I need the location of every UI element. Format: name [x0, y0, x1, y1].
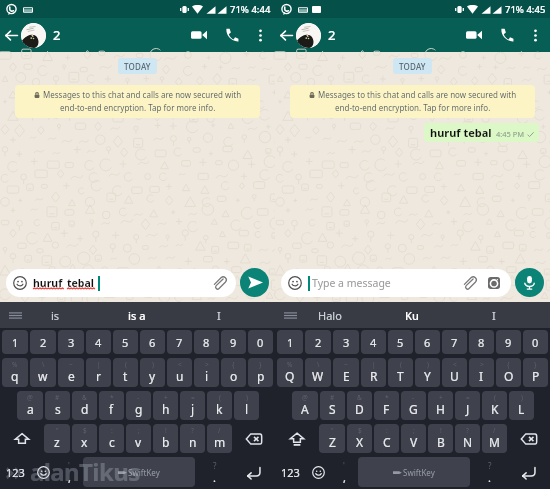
button[interactable]: ? — [197, 457, 232, 487]
button[interactable]: ) — [415, 358, 440, 387]
button[interactable]: I — [453, 302, 535, 328]
button[interactable]: Shift — [276, 424, 318, 453]
button[interactable]: ? — [455, 424, 480, 453]
button[interactable]: Record voice message — [515, 268, 544, 297]
button[interactable]: | — [86, 358, 111, 387]
button[interactable]: ' — [332, 457, 356, 487]
button[interactable]: @ — [17, 391, 43, 420]
button[interactable]: huruf — [6, 269, 236, 297]
button[interactable]: / — [207, 424, 232, 453]
button[interactable]: Backspace — [508, 424, 549, 453]
button[interactable]: TODAY — [393, 58, 432, 74]
button[interactable]: \ — [30, 358, 56, 387]
button[interactable]: Halo — [289, 302, 371, 328]
button[interactable]: 123 — [1, 457, 29, 487]
button[interactable]: 9 — [221, 330, 246, 354]
button[interactable]: ( — [113, 358, 138, 387]
button[interactable]: + — [428, 391, 453, 420]
button[interactable]: Attach — [460, 274, 478, 292]
button[interactable]: huruf tebal — [424, 123, 539, 142]
button[interactable]: ; — [126, 424, 151, 453]
button[interactable]: ? — [180, 424, 205, 453]
button[interactable]: Voice call — [220, 23, 244, 47]
button[interactable]: * — [99, 391, 124, 420]
button[interactable]: " — [319, 424, 345, 453]
button[interactable]: = — [180, 391, 205, 420]
button[interactable]: 7 — [442, 330, 467, 354]
button[interactable]: Space — [83, 457, 195, 487]
button[interactable]: 4 — [361, 330, 386, 354]
button[interactable]: ( — [388, 358, 413, 387]
button[interactable]: Backspace — [233, 424, 274, 453]
button[interactable]: More options — [525, 25, 545, 45]
button[interactable]: Video call — [461, 22, 487, 48]
button[interactable]: / — [482, 424, 507, 453]
button[interactable]: Messages to this chat and calls are now … — [290, 85, 535, 118]
button[interactable]: More options — [250, 25, 270, 45]
button[interactable]: Enter — [232, 457, 274, 487]
button[interactable]: Keyboard menu — [284, 309, 297, 322]
button[interactable]: Shift — [1, 424, 43, 453]
button[interactable]: 7 — [167, 330, 192, 354]
button[interactable]: > — [469, 358, 494, 387]
button[interactable]: > — [194, 358, 219, 387]
button[interactable]: ; — [401, 424, 426, 453]
button[interactable]: 6 — [140, 330, 165, 354]
button[interactable]: ! — [428, 424, 453, 453]
button[interactable]: ( — [207, 391, 232, 420]
button[interactable]: Space — [358, 457, 470, 487]
button[interactable]: 5 — [388, 330, 413, 354]
button[interactable]: { — [496, 358, 521, 387]
button[interactable]: < — [442, 358, 467, 387]
button[interactable]: $ — [72, 424, 97, 453]
button[interactable]: Attach — [210, 274, 228, 292]
button[interactable]: I — [178, 302, 260, 328]
button[interactable]: = — [455, 391, 480, 420]
button[interactable]: Video call — [186, 22, 212, 48]
button[interactable]: Camera — [485, 274, 503, 292]
button[interactable]: TODAY — [118, 58, 157, 74]
button[interactable]: ! — [153, 424, 178, 453]
button[interactable]: Enter — [507, 457, 549, 487]
button[interactable]: Emoji — [29, 457, 57, 487]
button[interactable]: # — [320, 391, 345, 420]
button[interactable]: @ — [292, 391, 318, 420]
button[interactable]: 6 — [415, 330, 440, 354]
button[interactable]: is — [14, 302, 96, 328]
button[interactable]: 1 — [2, 330, 28, 354]
button[interactable]: Profile photo — [296, 23, 321, 48]
button[interactable]: 5 — [113, 330, 138, 354]
button[interactable]: % — [2, 358, 28, 387]
button[interactable]: : — [374, 424, 399, 453]
button[interactable]: ) — [140, 358, 165, 387]
button[interactable]: 0 — [523, 330, 548, 354]
button[interactable]: 0 — [248, 330, 273, 354]
button[interactable]: ' — [57, 457, 81, 487]
button[interactable]: ( — [482, 391, 507, 420]
button[interactable]: \ — [305, 358, 331, 387]
button[interactable]: 4 — [86, 330, 111, 354]
button[interactable]: ) — [509, 391, 534, 420]
button[interactable]: - — [401, 391, 426, 420]
button[interactable]: # — [45, 391, 70, 420]
button[interactable]: 1 — [277, 330, 303, 354]
button[interactable]: 9 — [496, 330, 521, 354]
button[interactable]: " — [44, 424, 70, 453]
button[interactable]: < — [167, 358, 192, 387]
button[interactable]: Type a message — [281, 269, 511, 297]
button[interactable]: { — [221, 358, 246, 387]
button[interactable]: } — [523, 358, 548, 387]
button[interactable]: 3 — [58, 330, 84, 354]
button[interactable]: + — [153, 391, 178, 420]
button[interactable]: Back — [277, 26, 295, 44]
button[interactable]: 123 — [276, 457, 304, 487]
button[interactable]: 2 — [30, 330, 56, 354]
button[interactable]: is a — [96, 302, 178, 328]
button[interactable]: ) — [234, 391, 259, 420]
button[interactable]: 3 — [333, 330, 359, 354]
button[interactable]: Send — [240, 268, 269, 297]
button[interactable]: Back — [2, 26, 20, 44]
button[interactable]: % — [277, 358, 303, 387]
button[interactable]: Profile photo — [21, 23, 46, 48]
button[interactable]: 8 — [194, 330, 219, 354]
